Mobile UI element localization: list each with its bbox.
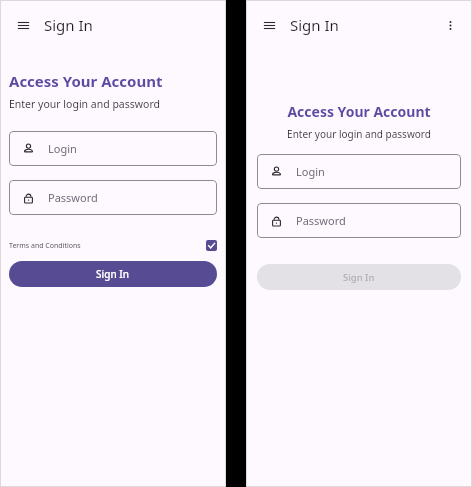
staticText: Sign In <box>96 267 130 281</box>
button[interactable]: Login <box>257 154 461 189</box>
button[interactable]: Sign In <box>257 264 461 290</box>
staticText: Password <box>296 213 346 228</box>
staticText: Terms and Conditions <box>9 241 81 251</box>
button[interactable]: Password <box>9 180 217 215</box>
staticText: Sign In <box>290 15 339 35</box>
staticText: Login <box>296 164 325 179</box>
button[interactable]: Sign In <box>9 261 217 287</box>
staticText: Enter your login and password <box>287 127 431 141</box>
button[interactable]: Menu <box>254 10 284 40</box>
button[interactable]: Login <box>9 131 217 166</box>
button[interactable]: Menu <box>8 10 38 40</box>
button[interactable]: Password <box>257 203 461 238</box>
staticText: Access Your Account <box>287 102 431 121</box>
staticText: Login <box>48 141 77 156</box>
staticText: Sign In <box>343 271 375 284</box>
staticText: Sign In <box>44 15 93 35</box>
staticText: Password <box>48 190 98 205</box>
staticText: Access Your Account <box>9 71 163 91</box>
button[interactable]: More options <box>436 11 464 39</box>
staticText: Enter your login and password <box>9 97 160 111</box>
button[interactable]: Accept terms and conditions <box>206 240 217 251</box>
